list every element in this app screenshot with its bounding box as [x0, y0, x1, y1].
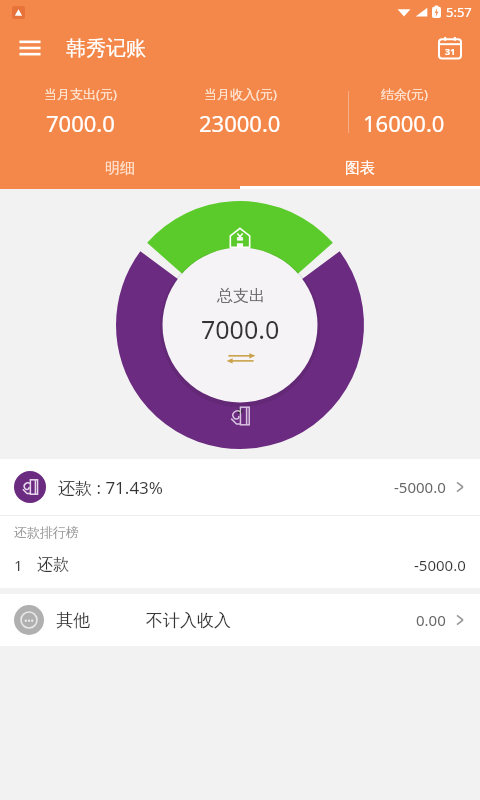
- staticText: 韩秀记账: [66, 36, 146, 61]
- staticText: 7000.0: [201, 312, 280, 346]
- staticText: 0.00: [416, 610, 446, 630]
- button[interactable]: Calendar: [430, 28, 470, 68]
- staticText: 结余(元): [381, 85, 428, 103]
- button[interactable]: 还款 : 71.43%: [0, 459, 480, 515]
- staticText: 当月收入(元): [204, 85, 277, 103]
- button[interactable]: 明细: [0, 150, 240, 186]
- button[interactable]: 图表: [240, 150, 480, 186]
- staticText: 图表: [345, 159, 375, 178]
- button[interactable]: Menu: [10, 28, 50, 68]
- staticText: 16000.0: [363, 108, 445, 138]
- staticText: 其他: [56, 610, 90, 631]
- staticText: 明细: [105, 159, 135, 178]
- staticText: 5:57: [446, 3, 472, 21]
- staticText: 23000.0: [199, 108, 281, 138]
- staticText: 31: [445, 45, 456, 57]
- staticText: 还款 : 71.43%: [58, 476, 163, 499]
- staticText: 1: [14, 555, 23, 575]
- staticText: 还款排行榜: [14, 524, 79, 540]
- staticText: 当月支出(元): [44, 85, 117, 103]
- button[interactable]: 其他: [0, 594, 480, 646]
- staticText: -5000.0: [414, 555, 466, 575]
- staticText: -5000.0: [394, 477, 446, 497]
- staticText: 不计入收入: [146, 610, 231, 631]
- staticText: 总支出: [217, 286, 265, 306]
- staticText: 7000.0: [46, 108, 115, 138]
- button[interactable]: 1: [0, 548, 480, 582]
- staticText: 还款: [37, 555, 69, 575]
